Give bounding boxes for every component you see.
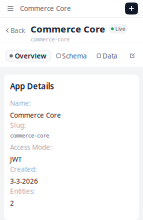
- staticText: Data: [102, 51, 117, 60]
- staticText: Slug:: [10, 121, 26, 130]
- staticText: Commerce Core: [30, 23, 105, 35]
- staticText: Back: [10, 26, 25, 35]
- staticText: Name:: [10, 99, 31, 108]
- button[interactable]: Overview: [6, 50, 50, 61]
- button[interactable]: Data: [94, 50, 121, 61]
- staticText: Entities:: [10, 187, 35, 196]
- staticText: App Details: [10, 81, 54, 91]
- staticText: Commerce Core: [20, 4, 71, 13]
- staticText: 3-3-2026: [10, 177, 38, 186]
- button[interactable]: Menu: [5, 3, 16, 14]
- staticText: Live: [115, 25, 125, 32]
- button[interactable]: Add: [125, 2, 138, 14]
- staticText: commerce-core: [30, 36, 69, 43]
- staticText: Access Mode:: [10, 143, 52, 152]
- staticText: Created:: [10, 165, 37, 174]
- button[interactable]: Back: [6, 23, 25, 35]
- staticText: 2: [10, 199, 14, 208]
- staticText: Overview: [15, 51, 47, 60]
- staticText: JWT: [10, 155, 22, 164]
- staticText: Commerce Core: [10, 111, 61, 120]
- button[interactable]: Open external link: [128, 51, 137, 60]
- button[interactable]: Schema: [53, 50, 91, 61]
- staticText: Schema: [62, 51, 87, 60]
- staticText: commerce-core: [10, 133, 49, 139]
